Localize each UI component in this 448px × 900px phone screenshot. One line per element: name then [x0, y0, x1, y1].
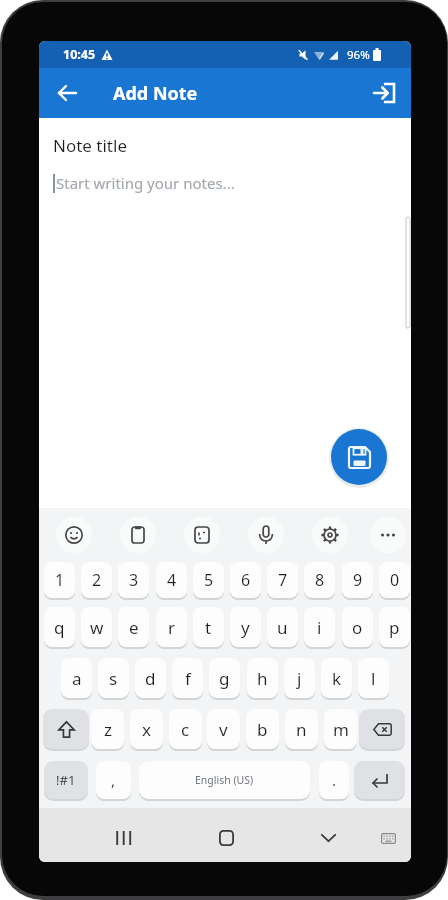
button[interactable]: 8 [304, 562, 335, 598]
button[interactable] [372, 824, 405, 852]
button[interactable]: c [169, 709, 202, 749]
button[interactable]: l [358, 658, 389, 698]
button[interactable] [56, 517, 92, 553]
staticText: t [205, 616, 212, 639]
staticText: x [142, 718, 151, 741]
button[interactable] [248, 517, 284, 553]
staticText: o [352, 616, 363, 639]
button[interactable] [184, 517, 220, 553]
staticText: Add Note [113, 81, 198, 106]
button[interactable] [312, 517, 348, 553]
staticText: . [332, 770, 337, 790]
button[interactable]: e [118, 607, 149, 647]
staticText: 6 [241, 569, 251, 591]
staticText: Start writing your notes... [56, 173, 235, 193]
button[interactable]: p [379, 607, 410, 647]
staticText: English (US) [195, 773, 254, 787]
staticText: , [111, 770, 116, 790]
staticText: 7 [278, 569, 288, 591]
staticText: u [277, 616, 288, 639]
staticText: e [129, 616, 139, 639]
button[interactable]: v [207, 709, 240, 749]
staticText: 9 [353, 569, 363, 591]
button[interactable]: s [98, 658, 129, 698]
button[interactable]: z [91, 709, 124, 749]
staticText: 8 [315, 569, 325, 591]
staticText: b [257, 718, 268, 741]
button[interactable] [354, 761, 405, 799]
button[interactable]: o [342, 607, 373, 647]
button[interactable]: b [246, 709, 279, 749]
staticText: r [168, 616, 176, 639]
button[interactable] [331, 429, 387, 485]
staticText: 4 [167, 569, 177, 591]
button[interactable]: d [135, 658, 166, 698]
button[interactable]: 9 [342, 562, 373, 598]
button[interactable]: 0 [379, 562, 410, 598]
button[interactable]: h [247, 658, 278, 698]
button[interactable]: r [156, 607, 187, 647]
staticText: 2 [92, 569, 102, 591]
staticText: h [257, 667, 268, 690]
staticText: i [317, 616, 322, 639]
button[interactable]: 7 [267, 562, 298, 598]
staticText: k [332, 667, 342, 690]
button[interactable]: a [61, 658, 92, 698]
button[interactable]: k [321, 658, 352, 698]
button[interactable]: y [230, 607, 261, 647]
staticText: s [109, 667, 118, 690]
button[interactable] [359, 68, 411, 118]
staticText: j [297, 667, 302, 690]
staticText: v [219, 718, 228, 741]
button[interactable] [306, 819, 351, 857]
button[interactable]: 2 [81, 562, 112, 598]
staticText: 3 [129, 569, 139, 591]
button[interactable]: 4 [156, 562, 187, 598]
staticText: q [54, 616, 65, 639]
staticText: d [145, 667, 156, 690]
button[interactable]: !#1 [44, 761, 88, 799]
staticText: 5 [204, 569, 214, 591]
button[interactable]: 1 [44, 562, 75, 598]
staticText: p [389, 616, 400, 639]
button[interactable]: 6 [230, 562, 261, 598]
button[interactable]: English (US) [139, 761, 310, 799]
staticText: c [181, 718, 190, 741]
button[interactable] [120, 517, 156, 553]
staticText: 0 [390, 569, 400, 591]
button[interactable] [359, 709, 405, 749]
staticText: w [90, 616, 104, 639]
staticText: n [296, 718, 307, 741]
button[interactable]: t [193, 607, 224, 647]
staticText: y [241, 616, 250, 639]
staticText: a [72, 667, 82, 690]
staticText: 1 [55, 569, 65, 591]
staticText: l [371, 667, 376, 690]
staticText: z [104, 718, 112, 741]
button[interactable] [43, 709, 89, 749]
button[interactable] [370, 517, 406, 553]
button[interactable]: q [44, 607, 75, 647]
button[interactable]: 3 [118, 562, 149, 598]
button[interactable] [39, 68, 95, 118]
button[interactable]: x [130, 709, 163, 749]
button[interactable]: j [284, 658, 315, 698]
button[interactable]: 5 [193, 562, 224, 598]
button[interactable]: i [304, 607, 335, 647]
button[interactable]: . [319, 761, 349, 799]
button[interactable]: n [285, 709, 318, 749]
staticText: Note title [53, 134, 127, 157]
staticText: 10:45 [63, 46, 96, 63]
button[interactable] [204, 819, 249, 857]
button[interactable]: f [172, 658, 203, 698]
staticText: g [219, 667, 230, 690]
staticText: f [185, 667, 191, 690]
button[interactable]: w [81, 607, 112, 647]
staticText: !#1 [56, 771, 76, 789]
button[interactable]: g [209, 658, 240, 698]
button[interactable]: m [324, 709, 357, 749]
button[interactable]: , [96, 761, 131, 799]
staticText: 96% [347, 47, 370, 63]
button[interactable] [101, 819, 146, 857]
button[interactable]: u [267, 607, 298, 647]
